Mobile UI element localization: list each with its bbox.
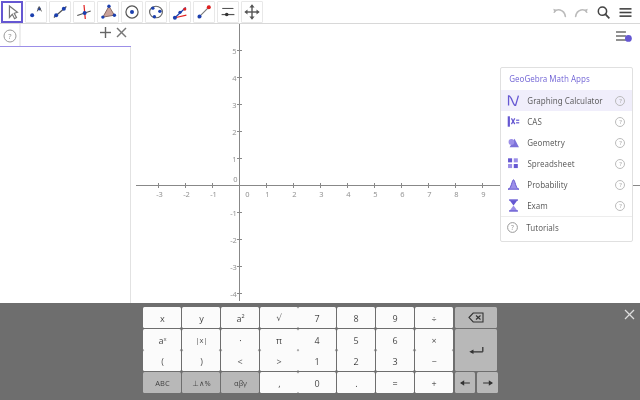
button[interactable]: + <box>415 372 453 393</box>
button[interactable]: Info about Graphing Calculator <box>612 93 628 109</box>
button[interactable]: Enter <box>455 329 497 371</box>
staticText: ? <box>619 118 622 126</box>
button[interactable]: Move tool <box>1 1 23 23</box>
staticText: ⊥∧% <box>192 378 211 388</box>
button[interactable]: = <box>376 372 414 393</box>
button[interactable]: , <box>260 372 298 393</box>
button[interactable]: Perpendicular line <box>73 1 95 23</box>
staticText: 2 <box>292 189 297 199</box>
button[interactable]: 2 <box>337 350 375 371</box>
button[interactable]: Exam <box>500 195 633 216</box>
staticText: ? <box>619 97 622 105</box>
button[interactable]: ( <box>143 350 181 371</box>
staticText: 8 <box>454 189 459 199</box>
staticText: -1 <box>210 189 217 199</box>
button[interactable]: a² <box>221 307 259 328</box>
button[interactable]: Point tool <box>25 1 47 23</box>
staticText: 12 <box>560 189 569 199</box>
button[interactable]: 0 <box>298 372 336 393</box>
button[interactable]: Undo <box>548 1 570 23</box>
button[interactable]: CAS <box>500 111 633 132</box>
button[interactable]: Graphics settings <box>612 26 636 46</box>
button[interactable]: ABC <box>143 372 181 393</box>
staticText: ? <box>619 181 622 189</box>
button[interactable]: 3 <box>376 350 414 371</box>
button[interactable]: Conic <box>145 1 167 23</box>
button[interactable]: 8 <box>337 307 375 328</box>
button[interactable]: 1 <box>298 350 336 371</box>
button[interactable]: > <box>260 350 298 371</box>
button[interactable]: ÷ <box>415 307 453 328</box>
staticText: 0 <box>314 377 320 389</box>
button[interactable]: − <box>415 350 453 371</box>
staticText: ? <box>619 139 622 147</box>
button[interactable]: 6 <box>376 329 414 350</box>
button[interactable]: Move right <box>477 372 498 393</box>
button[interactable]: Info about CAS <box>612 114 628 130</box>
button[interactable]: < <box>221 350 259 371</box>
staticText: 3 <box>319 189 324 199</box>
button[interactable]: Move left <box>455 372 475 393</box>
button[interactable]: Close panel <box>113 24 129 40</box>
button[interactable]: Redo <box>570 1 592 23</box>
button[interactable]: 5 <box>337 329 375 350</box>
button[interactable]: Slider <box>217 1 239 23</box>
button[interactable]: Transform <box>193 1 215 23</box>
button[interactable]: Close keyboard <box>621 306 637 322</box>
button[interactable]: Add input <box>97 24 113 40</box>
staticText: 4 <box>346 189 351 199</box>
staticText: . <box>355 377 358 389</box>
button[interactable]: × <box>415 329 453 350</box>
staticText: 0 <box>233 174 238 184</box>
button[interactable]: αβγ <box>221 372 259 393</box>
button[interactable]: √ <box>260 307 298 328</box>
button[interactable]: Backspace <box>455 307 497 328</box>
button[interactable]: Probability <box>500 174 633 195</box>
staticText: , <box>278 377 281 389</box>
staticText: -2 <box>183 189 190 199</box>
button[interactable]: aˣ <box>143 329 181 350</box>
button[interactable]: Geometry <box>500 132 633 153</box>
button[interactable]: Info about Probability <box>612 177 628 193</box>
staticText: 1 <box>265 189 270 199</box>
staticText: > <box>276 355 282 367</box>
staticText: -3 <box>230 262 237 272</box>
button[interactable]: . <box>337 372 375 393</box>
button[interactable]: Menu <box>614 1 636 23</box>
staticText: ) <box>200 355 203 367</box>
button[interactable]: π <box>260 329 298 350</box>
button[interactable]: Move graphics view <box>241 1 263 23</box>
button[interactable]: Circle <box>121 1 143 23</box>
button[interactable]: Search <box>592 1 614 23</box>
staticText: 1 <box>232 154 237 164</box>
staticText: 1 <box>314 355 320 367</box>
button[interactable]: y <box>182 307 220 328</box>
button[interactable]: Spreadsheet <box>500 153 633 174</box>
staticText: a² <box>236 312 245 324</box>
button[interactable]: · <box>221 329 259 350</box>
staticText: 9 <box>392 312 398 324</box>
button[interactable]: ) <box>182 350 220 371</box>
button[interactable]: x <box>143 307 181 328</box>
button[interactable]: Polygon <box>97 1 119 23</box>
button[interactable]: ? <box>500 217 633 237</box>
button[interactable]: ⊥∧% <box>182 372 220 393</box>
button[interactable]: Info about Exam <box>612 198 628 214</box>
button[interactable]: 9 <box>376 307 414 328</box>
button[interactable]: |x| <box>182 329 220 350</box>
staticText: − <box>431 355 437 367</box>
button[interactable]: 7 <box>298 307 336 328</box>
button[interactable]: Help <box>3 29 17 43</box>
button[interactable]: Line tool <box>49 1 71 23</box>
staticText: 7 <box>314 312 320 324</box>
staticText: Probability <box>527 179 568 190</box>
button[interactable]: Info about Geometry <box>612 135 628 151</box>
button[interactable]: Info about Spreadsheet <box>612 156 628 172</box>
button[interactable]: 4 <box>298 329 336 350</box>
staticText: 4 <box>232 73 237 83</box>
button[interactable]: Graphing Calculator <box>500 90 633 111</box>
button[interactable]: Measure <box>169 1 191 23</box>
staticText: ? <box>619 202 622 210</box>
staticText: 3 <box>392 355 398 367</box>
staticText: √ <box>276 313 282 323</box>
